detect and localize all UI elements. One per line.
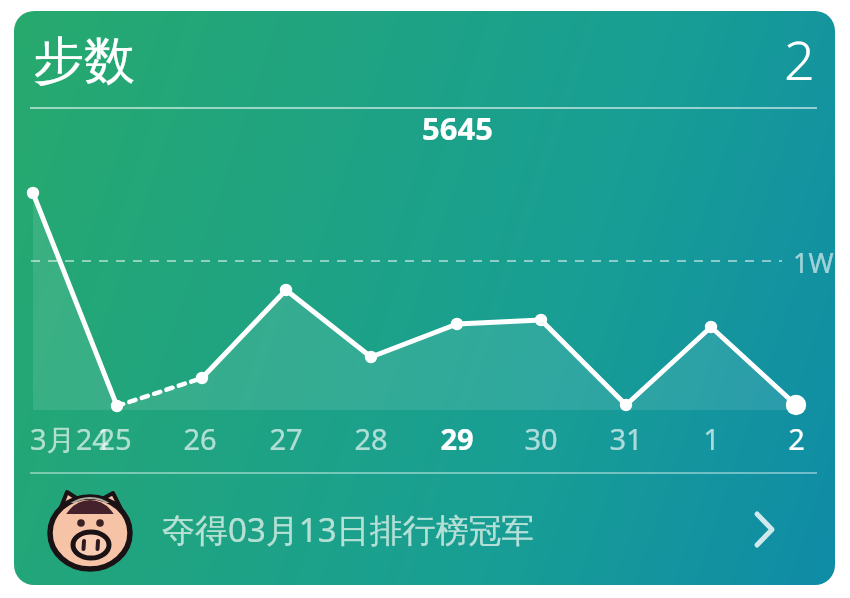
staticText: 28 bbox=[354, 419, 388, 458]
staticText: 3月24 bbox=[30, 419, 109, 459]
staticText: 1W bbox=[793, 244, 834, 281]
staticText: 5645 bbox=[422, 107, 493, 149]
staticText: 30 bbox=[524, 419, 558, 458]
staticText: 31 bbox=[609, 419, 643, 458]
staticText: 26 bbox=[183, 419, 217, 458]
staticText: 25 bbox=[98, 419, 132, 458]
staticText: 2 bbox=[788, 419, 805, 458]
staticText: 2 bbox=[784, 22, 815, 92]
staticText: 29 bbox=[440, 419, 474, 458]
staticText: 27 bbox=[269, 419, 303, 458]
button[interactable] bbox=[30, 477, 819, 581]
button[interactable]: 步数 bbox=[14, 11, 835, 585]
staticText: 1 bbox=[703, 419, 720, 458]
staticText: 步数 bbox=[33, 29, 135, 93]
staticText: 夺得03月13日排行榜冠军 bbox=[162, 507, 535, 552]
